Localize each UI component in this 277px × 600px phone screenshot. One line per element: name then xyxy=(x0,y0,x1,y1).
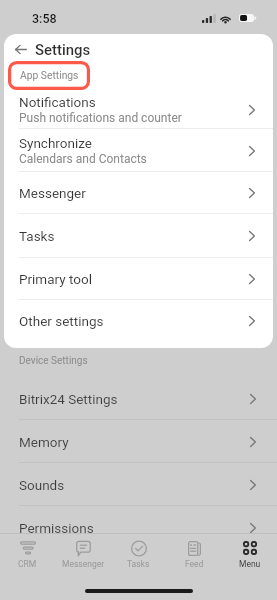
staticText: Menu xyxy=(239,559,261,569)
staticText: App Settings xyxy=(20,69,79,81)
staticText: Synchronize xyxy=(19,135,92,151)
button[interactable]: Memory xyxy=(0,420,277,463)
button[interactable]: Tasks xyxy=(111,534,166,579)
staticText: Tasks xyxy=(19,228,55,244)
button[interactable]: Feed xyxy=(167,534,222,579)
button[interactable]: Menu xyxy=(222,534,277,579)
staticText: Settings xyxy=(35,41,91,58)
staticText: Messenger xyxy=(62,559,105,569)
staticText: 3:58 xyxy=(32,11,57,26)
staticText: Notifications xyxy=(19,94,96,110)
staticText: Feed xyxy=(185,559,204,569)
staticText: Permissions xyxy=(19,520,94,536)
staticText: Push notifications and counter xyxy=(19,111,182,125)
staticText: Device Settings xyxy=(19,355,88,367)
button[interactable]: Notifications xyxy=(4,90,273,129)
staticText: Other settings xyxy=(19,313,104,329)
button[interactable]: Messenger xyxy=(4,172,273,214)
button[interactable]: Permissions xyxy=(0,506,277,549)
button[interactable]: Synchronize xyxy=(4,129,273,172)
button[interactable]: Primary tool xyxy=(4,258,273,300)
staticText: Calendars and Contacts xyxy=(19,152,147,166)
button[interactable]: Messenger xyxy=(56,534,111,579)
button[interactable]: Tasks xyxy=(4,214,273,258)
staticText: Memory xyxy=(19,434,69,450)
staticText: Bitrix24 Settings xyxy=(19,391,118,407)
button[interactable]: CRM xyxy=(0,534,55,579)
button[interactable]: Sounds xyxy=(0,463,277,506)
staticText: CRM xyxy=(18,559,37,569)
staticText: Messenger xyxy=(19,185,86,201)
button[interactable]: Bitrix24 Settings xyxy=(0,377,277,420)
staticText: Sounds xyxy=(19,477,65,493)
staticText: Tasks xyxy=(127,559,150,569)
button[interactable]: Back xyxy=(4,36,32,62)
staticText: Primary tool xyxy=(19,271,92,287)
button[interactable]: Other settings xyxy=(4,300,273,342)
